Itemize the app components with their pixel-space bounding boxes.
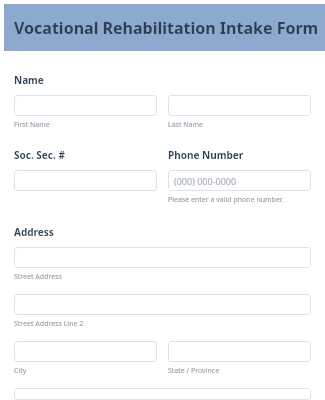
staticText: Name xyxy=(14,73,44,87)
staticText: Street Address Line 2 xyxy=(14,319,84,329)
staticText: (000) 000-0000 xyxy=(174,175,237,187)
staticText: Phone Number xyxy=(168,148,244,162)
staticText: First Name xyxy=(14,120,50,130)
staticText: Street Address xyxy=(14,272,62,282)
button[interactable]: Text input field xyxy=(14,388,311,400)
button[interactable]: Text input field xyxy=(14,294,311,315)
staticText: Vocational Rehabilitation Intake Form xyxy=(14,17,319,39)
button[interactable]: (000) 000-0000 xyxy=(168,170,311,191)
staticText: Soc. Sec. # xyxy=(14,148,65,162)
staticText: Address xyxy=(14,225,54,239)
staticText: City xyxy=(14,366,27,376)
button[interactable]: Text input field xyxy=(14,247,311,268)
button[interactable]: Text input field xyxy=(14,95,157,116)
button[interactable]: Text input field xyxy=(14,170,157,191)
staticText: Please enter a valid phone number. xyxy=(168,195,284,205)
button[interactable]: Vocational Rehabilitation Intake Form xyxy=(4,4,325,51)
button[interactable]: Text input field xyxy=(168,95,311,116)
button[interactable]: Text input field xyxy=(14,341,157,362)
button[interactable]: Text input field xyxy=(168,341,311,362)
staticText: State / Province xyxy=(168,366,220,376)
staticText: Last Name xyxy=(168,120,204,130)
